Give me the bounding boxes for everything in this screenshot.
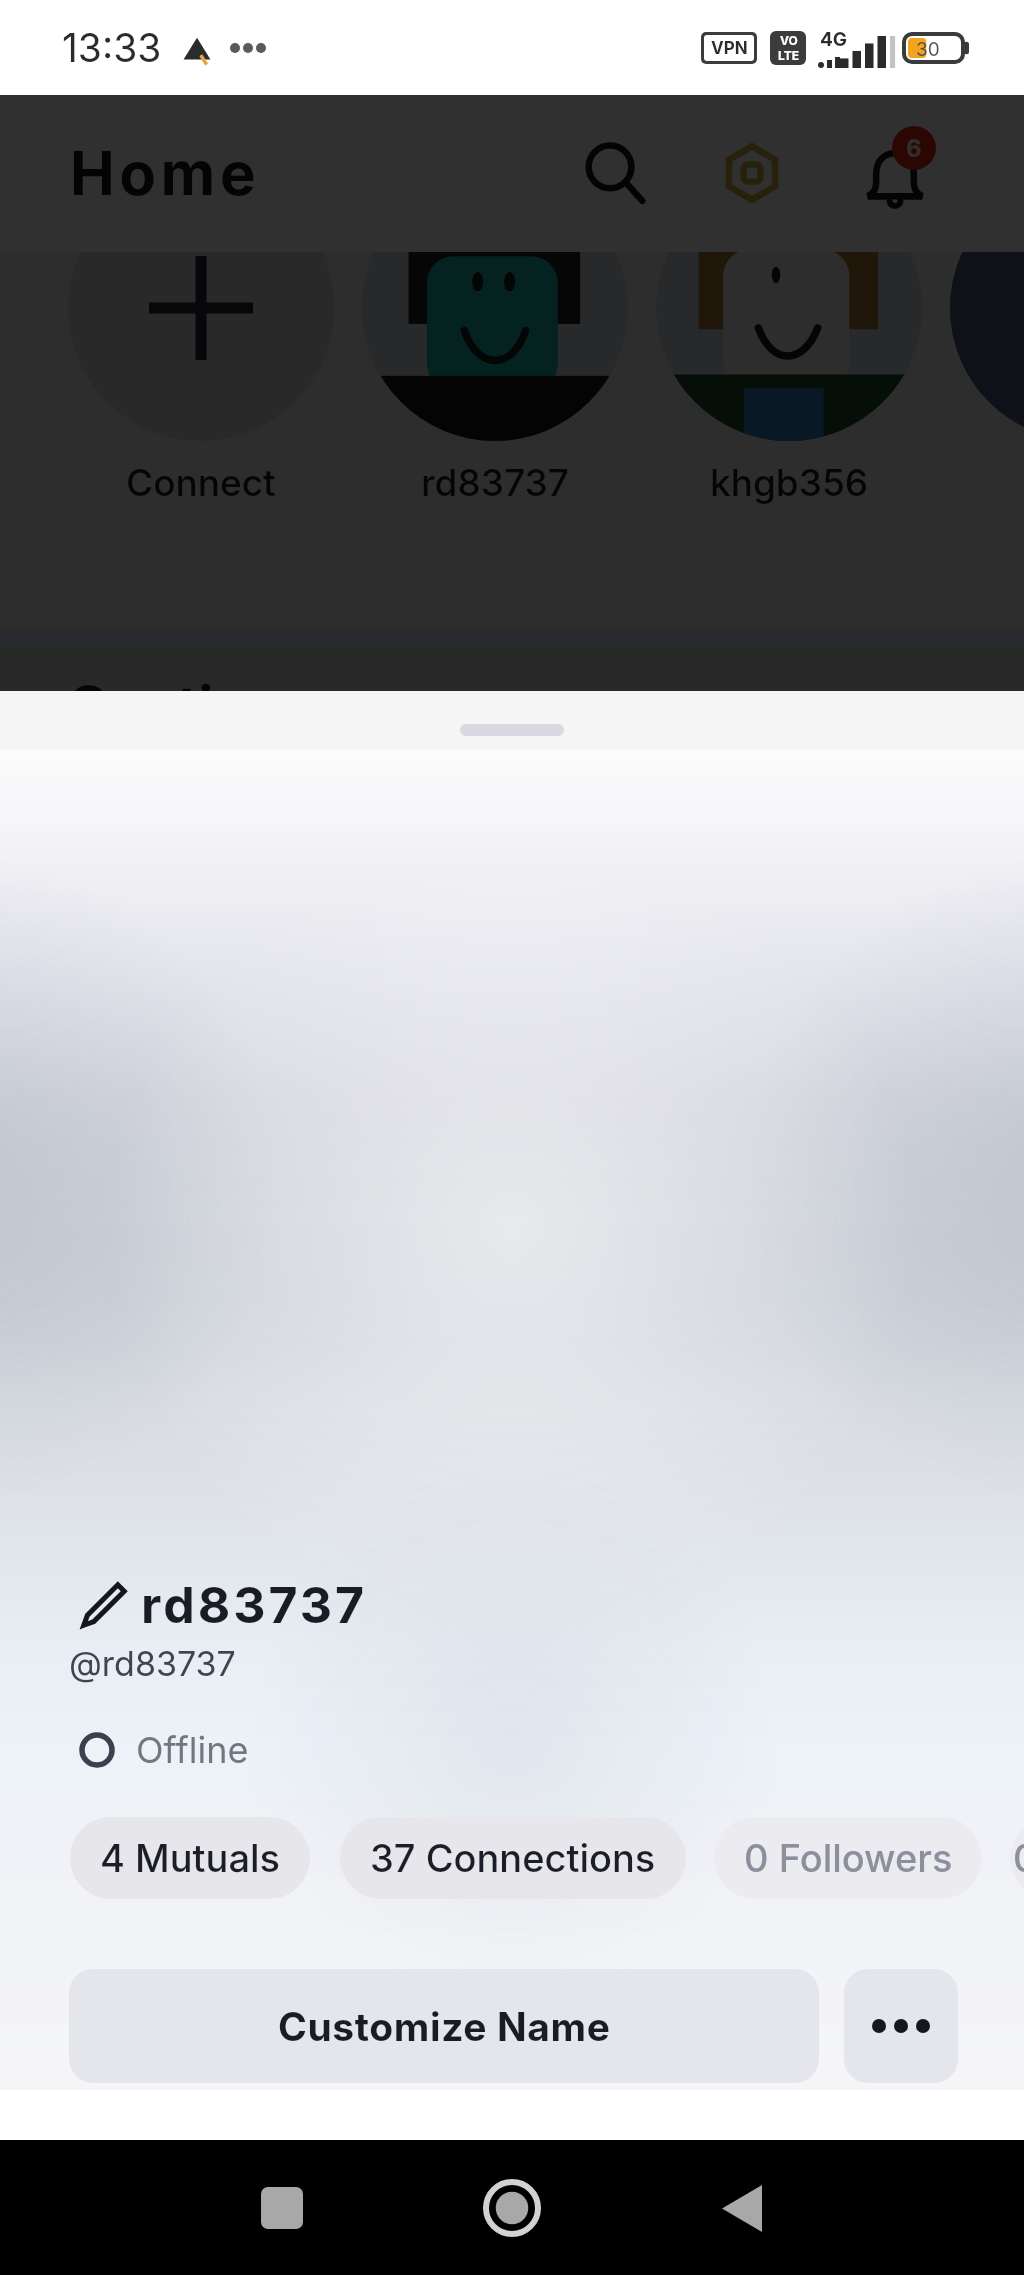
button[interactable]: 0 Followers [714,1817,982,1899]
button[interactable]: Search [551,109,679,237]
staticText: Home [70,137,261,210]
button[interactable]: Robux balance [688,109,816,237]
staticText: 0 Followers [744,1835,953,1881]
staticText: @rd83737 [69,1643,236,1684]
staticText: LTE [778,48,799,63]
staticText: Offline [136,1728,249,1772]
staticText: 4 Mutuals [100,1835,281,1881]
staticText: VPN [711,38,748,59]
button[interactable]: Friend avatar [656,175,922,441]
staticText: Continue › [67,673,354,741]
staticText: 0 Fo [1013,1835,1024,1881]
staticText: 6 [906,134,922,163]
button[interactable]: Customize Name [69,1969,819,2083]
button[interactable]: Friend avatar [362,175,628,441]
staticText: VO [780,33,798,48]
staticText: 4G [820,28,848,51]
button[interactable]: 4 Mutuals [70,1817,310,1899]
staticText: rd83737 [141,1575,368,1635]
button[interactable]: 37 Connections [340,1817,686,1899]
staticText: khgb356 [710,460,869,505]
button[interactable]: 0 Fo [1010,1817,1024,1899]
button[interactable]: Friend avatar [950,175,1024,441]
button[interactable]: Back [677,2143,807,2273]
staticText: 37 Connections [370,1835,656,1881]
staticText: Connect [126,460,276,505]
button[interactable]: Recent apps [217,2143,347,2273]
staticText: Customize Name [278,2003,611,2050]
staticText: 30 [916,38,940,61]
button[interactable]: Home [447,2143,577,2273]
button[interactable]: Notifications [832,109,960,237]
button[interactable]: More options [844,1969,958,2083]
button[interactable]: Connect [68,175,334,441]
staticText: 13:33 [62,24,162,71]
staticText: rd83737 [421,460,569,505]
button[interactable]: rd83737 [81,1575,368,1635]
